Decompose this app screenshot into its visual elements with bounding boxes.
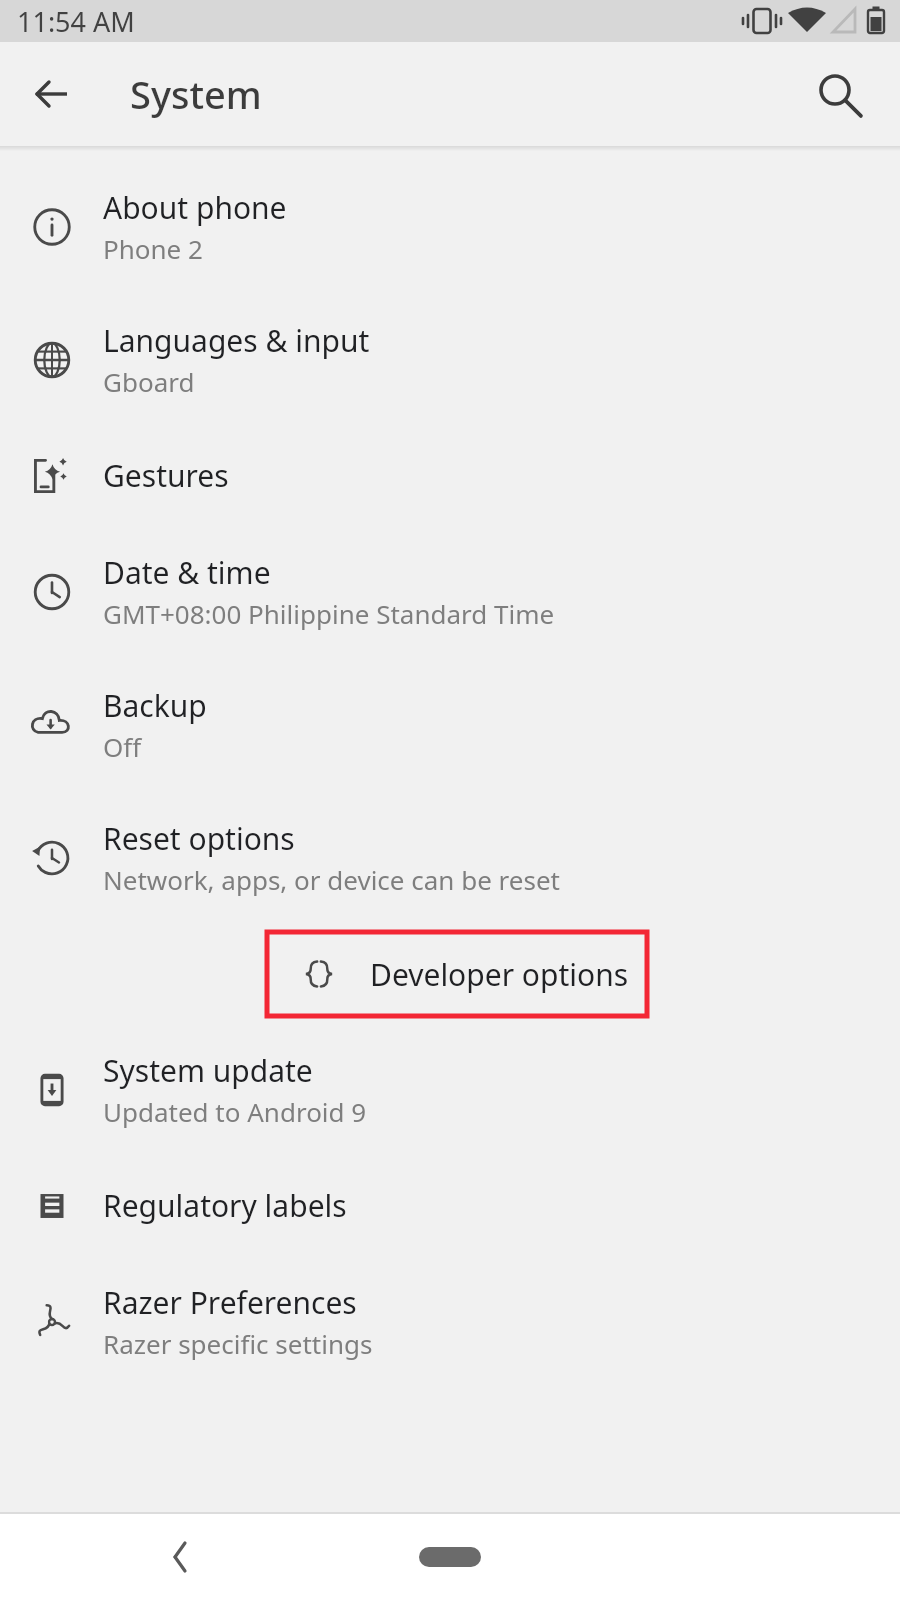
staticText: 11:54 AM bbox=[17, 3, 135, 40]
staticText: GMT+08:00 Philippine Standard Time bbox=[103, 596, 555, 631]
button[interactable]: Gestures bbox=[0, 426, 900, 525]
staticText: Reset options bbox=[103, 818, 295, 859]
staticText: System bbox=[130, 68, 262, 120]
staticText: Languages & input bbox=[103, 320, 370, 361]
button[interactable]: System update bbox=[0, 1023, 900, 1156]
staticText: Network, apps, or device can be reset bbox=[103, 862, 560, 897]
button[interactable]: Razer Preferences bbox=[0, 1255, 900, 1388]
button[interactable]: Back bbox=[146, 1523, 214, 1591]
staticText: Gestures bbox=[103, 455, 229, 496]
button[interactable]: Home bbox=[390, 1527, 510, 1587]
button[interactable]: Date & time bbox=[0, 525, 900, 658]
staticText: Regulatory labels bbox=[103, 1185, 347, 1226]
staticText: Off bbox=[103, 729, 142, 764]
button[interactable]: Regulatory labels bbox=[0, 1156, 900, 1255]
staticText: Backup bbox=[103, 685, 207, 726]
button[interactable]: Back bbox=[16, 58, 88, 130]
staticText: Phone 2 bbox=[103, 231, 203, 266]
staticText: Date & time bbox=[103, 552, 271, 593]
button[interactable]: Search bbox=[802, 58, 874, 130]
button[interactable]: Reset options bbox=[0, 791, 900, 924]
button[interactable]: Languages & input bbox=[0, 293, 900, 426]
staticText: About phone bbox=[103, 187, 287, 228]
staticText: Razer specific settings bbox=[103, 1326, 373, 1361]
staticText: Developer options bbox=[370, 954, 629, 995]
staticText: Razer Preferences bbox=[103, 1282, 357, 1323]
staticText: Gboard bbox=[103, 364, 195, 399]
staticText: Updated to Android 9 bbox=[103, 1094, 367, 1129]
staticText: System update bbox=[103, 1050, 313, 1091]
button[interactable]: Backup bbox=[0, 658, 900, 791]
button[interactable]: Developer options bbox=[267, 932, 647, 1016]
button[interactable]: About phone bbox=[0, 160, 900, 293]
